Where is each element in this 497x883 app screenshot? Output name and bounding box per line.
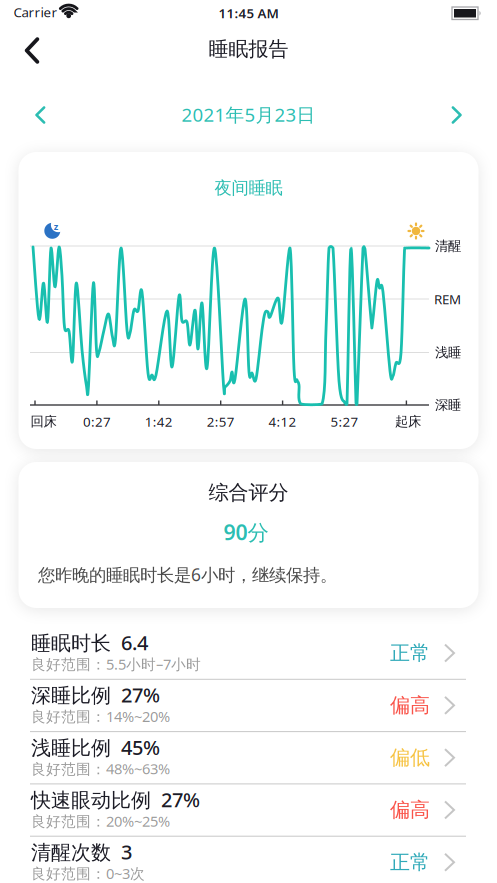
staticText: 浅睡比例 45% — [31, 734, 160, 760]
staticText: 2:57 — [207, 413, 235, 430]
button[interactable]: Back — [10, 28, 54, 72]
staticText: 回床 — [30, 413, 56, 430]
staticText: 良好范围：5.5小时–7小时 — [31, 654, 201, 674]
staticText: 正常 — [390, 641, 430, 665]
staticText: 良好范围：48%~63% — [31, 759, 170, 778]
staticText: 起床 — [395, 413, 421, 430]
staticText: 0:27 — [83, 413, 111, 430]
staticText: 1:42 — [145, 413, 173, 430]
staticText: 睡眠报告 — [208, 37, 288, 61]
staticText: 清醒 — [435, 238, 461, 254]
staticText: Carrier — [13, 3, 57, 21]
staticText: 您昨晚的睡眠时长是6小时，继续保持。 — [38, 563, 337, 586]
staticText: 偏高 — [390, 798, 430, 822]
staticText: 偏高 — [390, 693, 430, 718]
staticText: 快速眼动比例 27% — [31, 786, 200, 813]
staticText: 夜间睡眠 — [214, 177, 282, 199]
staticText: 4:12 — [269, 413, 297, 430]
staticText: z — [54, 220, 59, 232]
staticText: 深睡 — [435, 397, 461, 413]
staticText: 2021年5月23日 — [181, 102, 315, 127]
staticText: 深睡比例 27% — [31, 682, 160, 708]
staticText: 浅睡 — [435, 344, 461, 361]
button[interactable]: 睡眠时长 6.4 — [0, 627, 497, 679]
staticText: 正常 — [390, 850, 430, 875]
staticText: 5:27 — [330, 413, 358, 430]
staticText: 清醒次数 3 — [31, 838, 132, 865]
button[interactable]: 深睡比例 27% — [0, 679, 497, 732]
staticText: 睡眠时长 6.4 — [31, 629, 148, 656]
staticText: REM — [434, 290, 461, 308]
staticText: 11:45 AM — [218, 4, 278, 22]
staticText: 良好范围：20%~25% — [31, 811, 170, 831]
button[interactable]: 浅睡比例 45% — [0, 732, 497, 784]
staticText: 综合评分 — [208, 480, 288, 505]
button[interactable]: 快速眼动比例 27% — [0, 784, 497, 836]
staticText: 良好范围：0~3次 — [31, 863, 145, 883]
staticText: 偏低 — [390, 745, 430, 770]
button[interactable]: Previous day — [18, 95, 62, 135]
staticText: 90分 — [223, 518, 268, 546]
button[interactable]: Next day — [435, 95, 479, 135]
staticText: 良好范围：14%~20% — [31, 707, 170, 726]
button[interactable]: 清醒次数 3 — [0, 836, 497, 883]
